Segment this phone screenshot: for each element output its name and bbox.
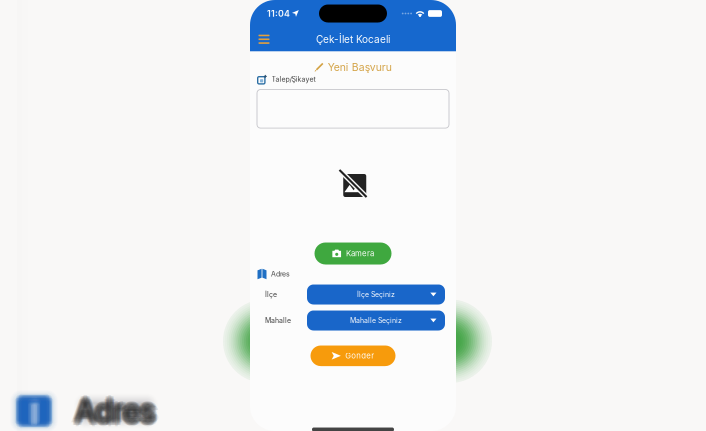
staticText: Kamera xyxy=(346,249,374,258)
staticText: Adres xyxy=(76,392,156,429)
staticText: Adres xyxy=(74,392,154,429)
staticText: Adres xyxy=(78,392,158,429)
staticText: Adres xyxy=(72,395,152,431)
button[interactable]: Kamera xyxy=(314,242,391,264)
staticText: Adres xyxy=(74,390,154,427)
staticText: Adres xyxy=(74,391,154,428)
staticText: Talep/Şikayet xyxy=(272,75,316,83)
staticText: Adres xyxy=(76,395,156,431)
staticText: Adres xyxy=(75,388,155,425)
staticText: Adres xyxy=(79,392,159,429)
staticText: Adres xyxy=(76,394,156,431)
staticText: Mahalle xyxy=(265,316,291,325)
staticText: Adres xyxy=(76,391,156,428)
button[interactable]: Gönder xyxy=(310,345,395,366)
staticText: Adres xyxy=(72,394,152,431)
staticText: 11:04 xyxy=(267,8,290,19)
staticText: Adres xyxy=(271,270,290,278)
staticText: Adres xyxy=(75,394,155,431)
staticText: İlçe Seçiniz xyxy=(357,290,395,299)
staticText: Adres xyxy=(75,391,155,428)
staticText: Adres xyxy=(78,395,158,431)
staticText: Yeni Başvuru xyxy=(328,61,392,74)
staticText: Adres xyxy=(74,395,154,431)
staticText: Adres xyxy=(78,394,158,431)
staticText: Adres xyxy=(72,390,152,427)
staticText: Adres xyxy=(75,392,155,429)
staticText: Adres xyxy=(78,391,158,428)
staticText: Adres xyxy=(72,392,152,429)
staticText: Adres xyxy=(71,392,151,429)
staticText: İlçe xyxy=(265,290,277,299)
staticText: Mahalle Seçiniz xyxy=(350,316,402,325)
staticText: Adres xyxy=(72,391,152,428)
staticText: Adres xyxy=(75,395,155,431)
staticText: Adres xyxy=(78,390,158,427)
staticText: Adres xyxy=(75,397,155,431)
staticText: Adres xyxy=(76,390,156,427)
button[interactable]: Mahalle Seçiniz xyxy=(307,310,445,330)
staticText: Adres xyxy=(74,394,154,431)
button[interactable]: Menu xyxy=(251,27,277,51)
staticText: Gönder xyxy=(345,351,374,360)
staticText: Adres xyxy=(75,390,155,427)
staticText: Çek-İlet Kocaeli xyxy=(316,33,390,45)
button[interactable]: İlçe Seçiniz xyxy=(307,284,445,304)
